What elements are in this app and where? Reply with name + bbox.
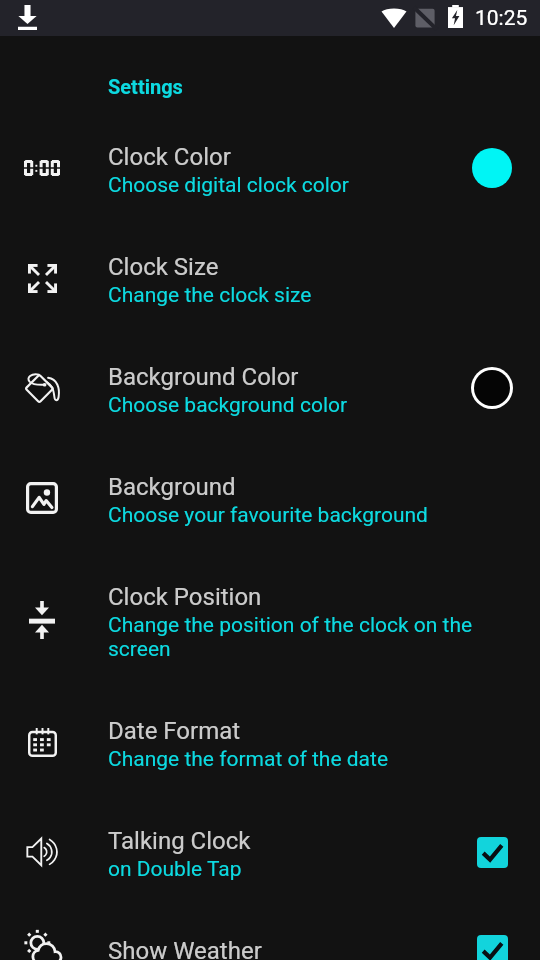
staticText: Change the format of the date bbox=[108, 747, 389, 772]
button[interactable]: Toggle bbox=[477, 837, 508, 868]
button[interactable]: Clock Position bbox=[0, 559, 540, 693]
other: Download bbox=[18, 5, 37, 30]
staticText: 10:25 bbox=[475, 6, 528, 31]
staticText: Choose your favourite background bbox=[108, 503, 428, 528]
button[interactable]: Toggle bbox=[477, 935, 508, 960]
button[interactable]: Date Format bbox=[0, 693, 540, 803]
button[interactable]: Clock color swatch bbox=[472, 148, 512, 188]
button[interactable]: Background color swatch bbox=[474, 370, 510, 406]
staticText: Date Format bbox=[108, 717, 241, 745]
button[interactable]: Background Color bbox=[0, 339, 540, 449]
staticText: Settings bbox=[108, 75, 183, 98]
staticText: on Double Tap bbox=[108, 857, 242, 882]
staticText: Clock Position bbox=[108, 583, 262, 611]
button[interactable]: Background bbox=[0, 449, 540, 559]
staticText: Background Color bbox=[108, 363, 299, 391]
staticText: Change the clock size bbox=[108, 283, 312, 308]
staticText: Change the position of the clock on the … bbox=[108, 613, 486, 661]
staticText: Clock Color bbox=[108, 143, 231, 171]
staticText: Show Weather bbox=[108, 937, 262, 960]
staticText: Background bbox=[108, 473, 236, 501]
staticText: Talking Clock bbox=[108, 827, 251, 855]
button[interactable]: Clock Size bbox=[0, 229, 540, 339]
button[interactable]: Talking Clock bbox=[0, 803, 540, 913]
staticText: Choose digital clock color bbox=[108, 173, 349, 198]
button[interactable]: Clock Color bbox=[0, 119, 540, 229]
staticText: Clock Size bbox=[108, 253, 219, 281]
staticText: Choose background color bbox=[108, 393, 348, 418]
button[interactable]: Show Weather bbox=[0, 913, 540, 960]
